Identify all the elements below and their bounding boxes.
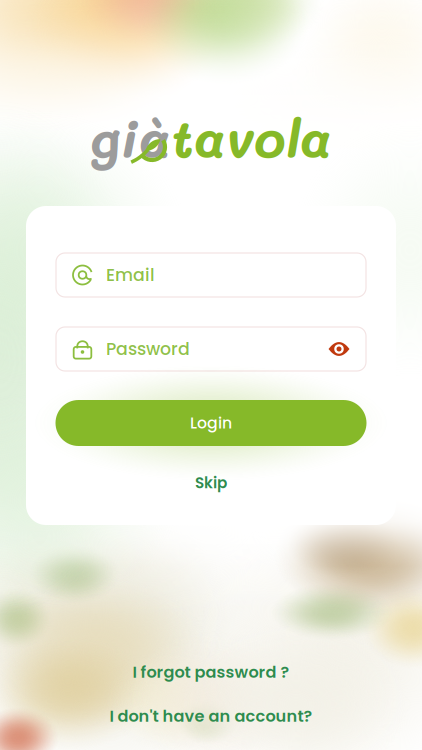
button[interactable]: I don't have an account? [109,701,312,731]
button[interactable]: I forgot password ? [132,657,289,687]
button[interactable]: Login [26,400,396,446]
staticText: Login [190,412,232,434]
staticText: Skip [195,472,227,494]
staticText: I forgot password ? [132,661,289,683]
button[interactable]: Password [56,327,366,371]
staticText: I don't have an account? [109,705,312,727]
staticText: già [90,103,171,171]
button[interactable]: Skip [156,467,266,499]
button[interactable]: Email [56,253,366,297]
staticText: Email [106,263,155,287]
staticText: Password [106,337,190,361]
staticText: tavola [171,103,332,171]
